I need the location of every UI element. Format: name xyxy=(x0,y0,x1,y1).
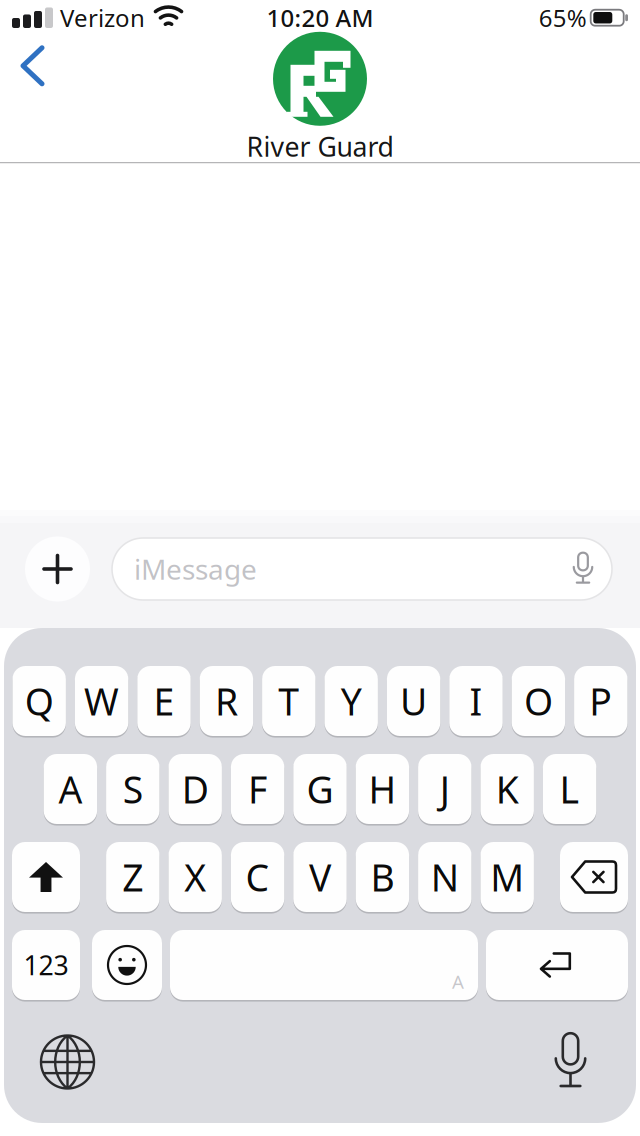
staticText: J xyxy=(440,764,450,814)
button[interactable]: C xyxy=(231,842,284,912)
button[interactable]: River Guard conversation details xyxy=(246,0,393,167)
staticText: A xyxy=(452,969,464,994)
staticText: V xyxy=(309,852,331,902)
button[interactable]: M xyxy=(480,842,534,912)
button[interactable]: E xyxy=(137,666,191,736)
staticText: O xyxy=(524,676,553,726)
staticText: D xyxy=(182,764,209,814)
staticText: U xyxy=(400,676,427,726)
button[interactable]: Y xyxy=(324,666,378,736)
staticText: L xyxy=(560,764,580,814)
staticText: F xyxy=(248,764,267,814)
staticText: X xyxy=(184,852,206,902)
button[interactable]: P xyxy=(574,666,627,736)
button[interactable]: O xyxy=(512,666,565,736)
staticText: H xyxy=(368,764,396,814)
staticText: Q xyxy=(25,676,54,726)
button[interactable]: X xyxy=(168,842,222,912)
staticText: C xyxy=(246,852,270,902)
button[interactable]: J xyxy=(418,754,471,824)
button[interactable]: S xyxy=(106,754,159,824)
button[interactable]: W xyxy=(75,666,128,736)
staticText: iMessage xyxy=(134,550,257,588)
staticText: G xyxy=(306,764,333,814)
staticText: Y xyxy=(341,676,362,726)
button[interactable]: G xyxy=(293,754,347,824)
button[interactable]: Delete xyxy=(560,842,628,912)
button[interactable]: Add attachment xyxy=(25,536,90,601)
button[interactable]: L xyxy=(543,754,596,824)
button[interactable]: Back xyxy=(0,0,42,84)
button[interactable]: Return xyxy=(486,930,628,1000)
button[interactable]: H xyxy=(356,754,409,824)
button[interactable]: I xyxy=(449,666,503,736)
staticText: 123 xyxy=(23,947,68,983)
staticText: N xyxy=(431,852,459,902)
staticText: A xyxy=(58,764,82,814)
staticText: B xyxy=(370,852,394,902)
button[interactable]: A xyxy=(44,754,97,824)
button[interactable]: Shift xyxy=(12,842,80,912)
staticText: R xyxy=(215,676,238,726)
button[interactable]: N xyxy=(418,842,471,912)
staticText: 65% xyxy=(539,2,587,34)
button[interactable]: T xyxy=(262,666,315,736)
button[interactable]: D xyxy=(168,754,222,824)
staticText: T xyxy=(278,676,299,726)
staticText: P xyxy=(589,676,612,726)
button[interactable]: Numbers xyxy=(12,930,80,1000)
staticText: W xyxy=(84,676,119,726)
button[interactable]: Emoji xyxy=(92,930,162,1000)
button[interactable]: U xyxy=(387,666,440,736)
button[interactable]: F xyxy=(231,754,284,824)
button[interactable]: V xyxy=(293,842,347,912)
staticText: I xyxy=(469,676,482,726)
button[interactable]: B xyxy=(356,842,409,912)
button[interactable]: Dictation xyxy=(553,1032,588,1092)
button[interactable]: Space xyxy=(170,930,478,1000)
button[interactable]: Q xyxy=(12,666,66,736)
staticText: Z xyxy=(122,852,143,902)
button[interactable]: Z xyxy=(106,842,159,912)
button[interactable]: R xyxy=(200,666,253,736)
staticText: 10:20 AM xyxy=(266,2,373,34)
button[interactable]: iMessage text field xyxy=(112,538,612,600)
staticText: E xyxy=(153,676,174,726)
button[interactable]: Next keyboard xyxy=(41,1035,94,1088)
staticText: Verizon xyxy=(60,2,145,34)
staticText: S xyxy=(123,764,143,814)
staticText: M xyxy=(490,852,524,902)
button[interactable]: K xyxy=(480,754,534,824)
staticText: K xyxy=(496,764,519,814)
staticText: River Guard xyxy=(246,129,393,164)
